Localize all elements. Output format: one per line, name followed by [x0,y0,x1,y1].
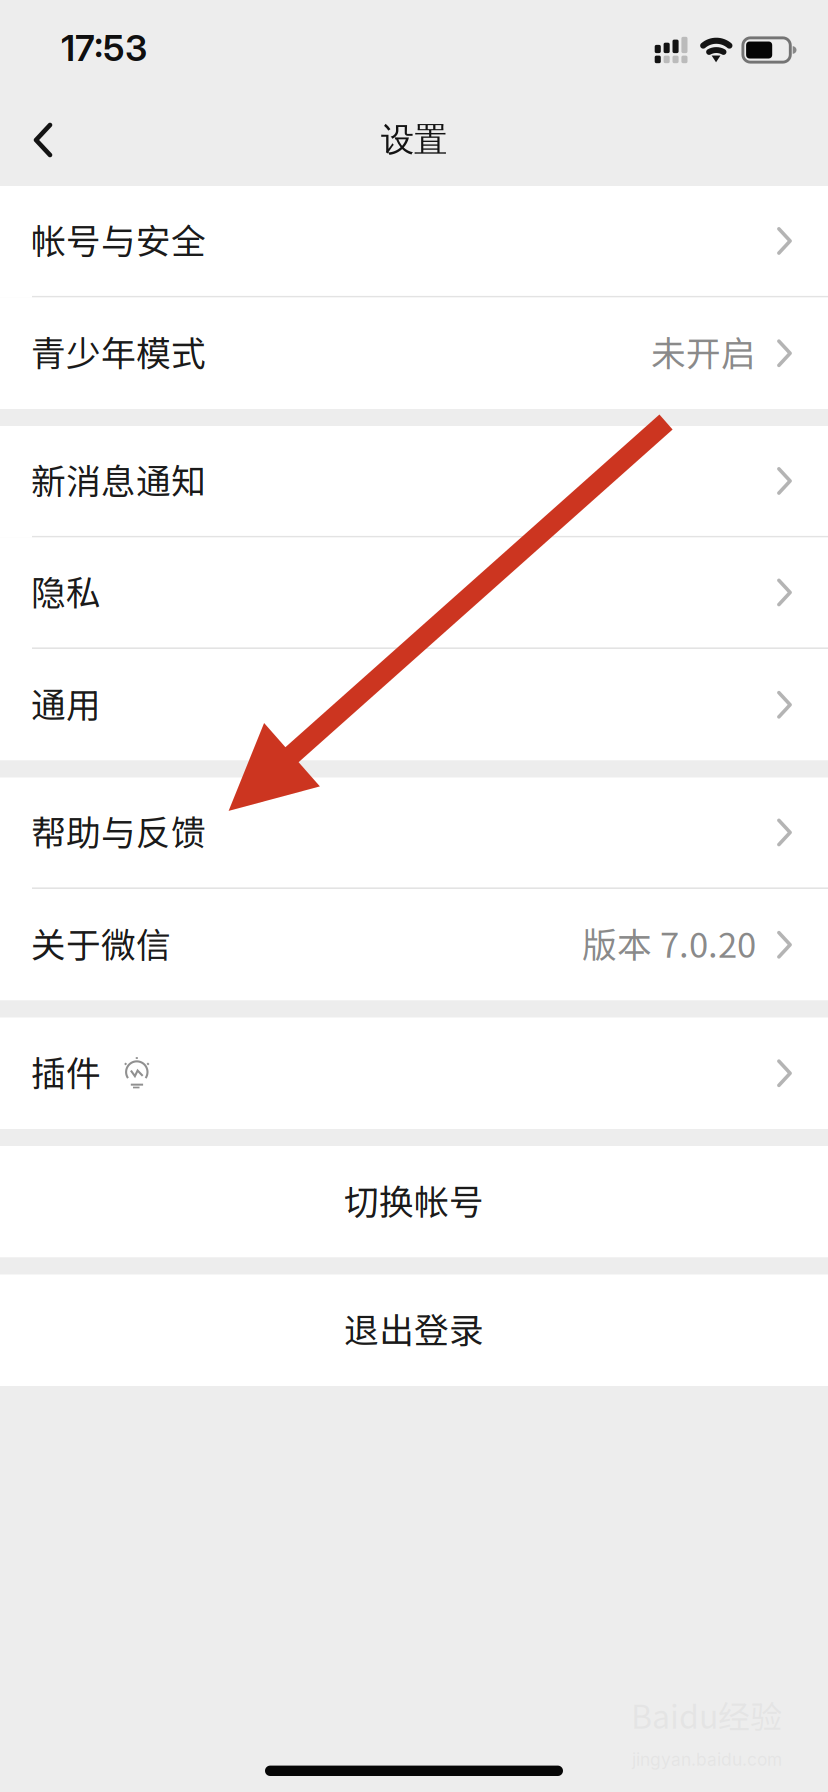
staticText: 未开启 [651,326,756,376]
staticText: 帮助与反馈 [31,805,206,856]
button[interactable]: 新消息通知 [0,426,828,537]
staticText: 青少年模式 [31,326,206,376]
staticText: 切换帐号 [344,1175,484,1225]
staticText: 17:53 [61,26,147,70]
staticText: 新消息通知 [31,454,206,504]
staticText: 通用 [31,678,101,728]
staticText: 版本 7.0.20 [582,918,756,968]
button[interactable]: 通用 [0,649,828,760]
button[interactable]: 切换帐号 [0,1146,828,1257]
staticText: 退出登录 [344,1303,484,1353]
button[interactable]: 帮助与反馈 [0,777,828,889]
button[interactable]: 关于微信 [0,889,828,1000]
staticText: 隐私 [31,565,101,616]
button[interactable]: 退出登录 [0,1274,828,1386]
button[interactable]: Back [0,88,86,186]
staticText: 设置 [381,119,447,161]
staticText: 关于微信 [31,918,171,968]
button[interactable]: 青少年模式 [0,297,828,409]
staticText: Baidu经验 [631,1692,782,1738]
button[interactable]: 插件 [0,1017,828,1129]
staticText: 插件 [31,1046,101,1096]
button[interactable]: 隐私 [0,537,828,649]
staticText: 帐号与安全 [31,214,206,264]
button[interactable]: 帐号与安全 [0,186,828,297]
